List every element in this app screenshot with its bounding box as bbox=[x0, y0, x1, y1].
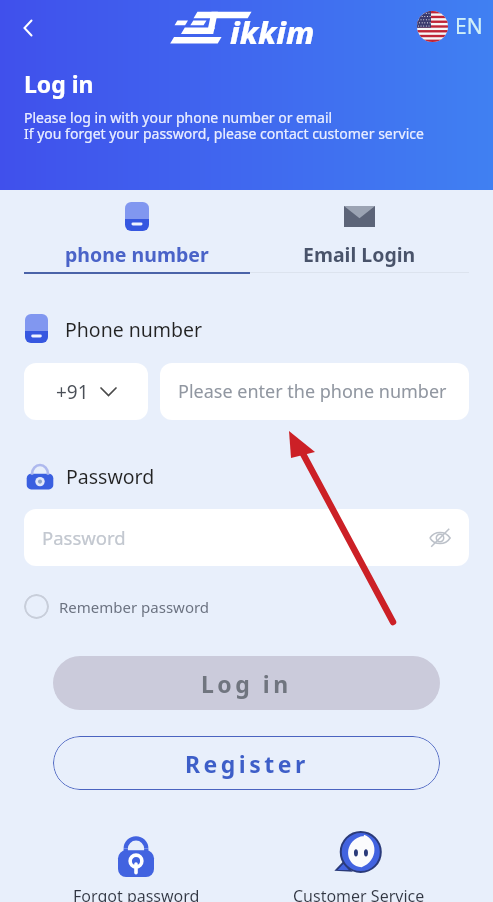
button[interactable]: Password bbox=[24, 509, 469, 566]
staticText: Password bbox=[42, 525, 126, 550]
staticText: Please enter the phone number bbox=[178, 379, 447, 404]
staticText: Password bbox=[66, 463, 155, 490]
button[interactable]: Forgot password bbox=[56, 826, 216, 902]
staticText: Customer Service bbox=[293, 885, 425, 902]
button[interactable]: Sikkim bbox=[172, 6, 324, 50]
button[interactable]: Register bbox=[53, 736, 440, 790]
staticText: ikkim bbox=[230, 11, 315, 53]
staticText: Forgot password bbox=[73, 885, 200, 902]
staticText: Log in bbox=[24, 68, 94, 99]
button[interactable]: Back bbox=[8, 8, 48, 48]
staticText: Phone number bbox=[65, 316, 203, 343]
button[interactable]: Remember password bbox=[24, 594, 210, 619]
staticText: Register bbox=[185, 748, 309, 779]
staticText: Email Login bbox=[303, 241, 416, 268]
button[interactable]: Email Login bbox=[250, 190, 469, 274]
staticText: Please log in with your phone number or … bbox=[24, 108, 333, 127]
button[interactable]: +91 bbox=[24, 363, 148, 420]
button[interactable]: EN bbox=[417, 11, 483, 42]
button[interactable]: Show password bbox=[425, 523, 455, 553]
staticText: +91 bbox=[56, 379, 89, 405]
button[interactable]: Customer Service bbox=[279, 826, 439, 902]
staticText: EN bbox=[455, 12, 483, 41]
staticText: If you forget your password, please cont… bbox=[24, 124, 424, 143]
staticText: Log in bbox=[201, 668, 292, 699]
button[interactable]: Log in bbox=[53, 656, 440, 710]
button[interactable]: phone number bbox=[24, 190, 250, 274]
staticText: Remember password bbox=[59, 597, 210, 617]
staticText: phone number bbox=[65, 241, 209, 268]
button[interactable]: Please enter the phone number bbox=[160, 363, 469, 420]
